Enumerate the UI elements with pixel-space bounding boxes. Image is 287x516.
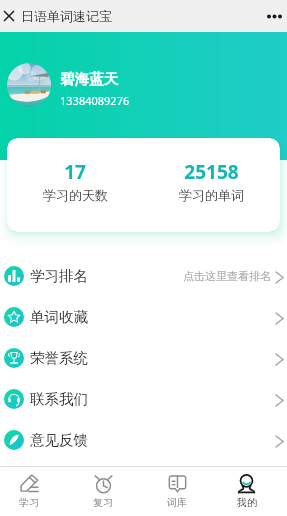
button[interactable]: 单词收藏 bbox=[0, 296, 287, 337]
button[interactable]: 荣誉系统 bbox=[0, 337, 287, 378]
staticText: 荣誉系统 bbox=[30, 349, 88, 367]
staticText: 点击这里查看排名 bbox=[183, 269, 271, 283]
staticText: 碧海蓝天 bbox=[60, 70, 118, 88]
button[interactable]: 学习排名 bbox=[0, 255, 287, 296]
button[interactable]: 复习 bbox=[66, 467, 140, 516]
staticText: 意见反馈 bbox=[30, 431, 88, 449]
button[interactable]: 词库 bbox=[140, 467, 214, 516]
staticText: 学习排名 bbox=[30, 267, 88, 285]
button[interactable]: 意见反馈 bbox=[0, 419, 287, 460]
staticText: 25158 bbox=[184, 159, 239, 185]
staticText: 学习 bbox=[19, 496, 39, 509]
staticText: 词库 bbox=[167, 496, 187, 509]
button[interactable]: More options bbox=[262, 0, 286, 32]
staticText: 17 bbox=[64, 159, 86, 185]
button[interactable]: 学习 bbox=[0, 467, 66, 516]
button[interactable]: 我的 bbox=[214, 467, 279, 516]
staticText: 单词收藏 bbox=[30, 308, 88, 326]
button[interactable]: 联系我们 bbox=[0, 378, 287, 419]
staticText: 日语单词速记宝 bbox=[21, 8, 112, 24]
staticText: 复习 bbox=[93, 496, 113, 509]
staticText: 13384089276 bbox=[60, 93, 130, 108]
button[interactable]: 25158 bbox=[143, 138, 280, 232]
staticText: 学习的单词 bbox=[179, 187, 244, 203]
staticText: 学习的天数 bbox=[43, 187, 108, 203]
button[interactable]: Close bbox=[0, 0, 17, 32]
button[interactable]: 17 bbox=[7, 138, 143, 232]
staticText: 联系我们 bbox=[30, 390, 88, 408]
staticText: 我的 bbox=[237, 496, 257, 509]
